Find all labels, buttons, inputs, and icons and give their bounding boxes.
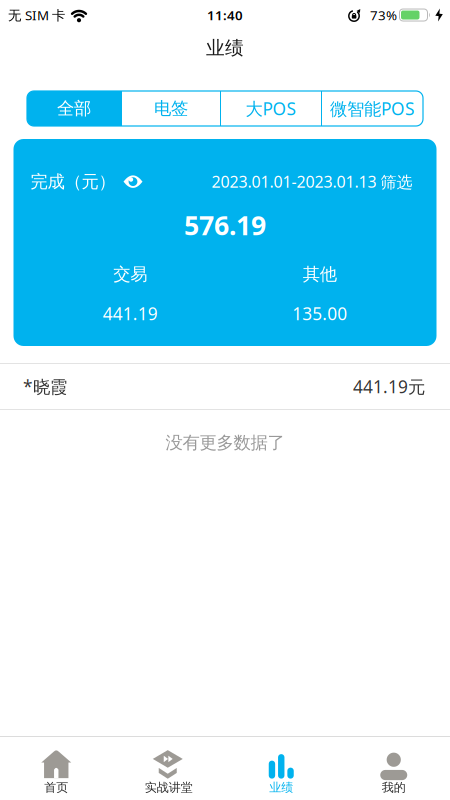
staticText: 没有更多数据了 [165,432,284,453]
staticText: 全部 [57,98,91,119]
staticText: 首页 [44,780,68,795]
button[interactable]: 业绩 [225,742,337,795]
button[interactable]: 实战讲堂 [112,742,225,795]
button[interactable]: 微智能POS [322,91,423,126]
button[interactable]: *晓霞 [0,364,450,409]
staticText: 441.19 [103,302,158,325]
button[interactable]: 我的 [337,742,450,795]
staticText: *晓霞 [23,375,67,398]
staticText: 其他 [303,264,337,285]
staticText: 2023.01.01-2023.01.13 筛选 [211,171,412,192]
button[interactable]: 显示金额 [115,175,142,189]
staticText: 业绩 [269,780,293,795]
button[interactable]: 首页 [0,742,112,795]
button[interactable]: 大POS [221,91,321,126]
button[interactable]: 电签 [122,91,220,126]
staticText: 无 SIM 卡 [8,6,65,24]
staticText: 电签 [154,98,188,119]
staticText: 业绩 [206,36,244,59]
staticText: 交易 [113,264,147,285]
staticText: 大POS [245,97,296,120]
staticText: 11:40 [207,6,243,24]
staticText: 我的 [382,780,406,795]
staticText: 微智能POS [330,97,415,120]
button[interactable]: 全部 [27,91,121,126]
staticText: 135.00 [292,302,347,325]
staticText: 实战讲堂 [145,780,193,795]
staticText: 完成（元） [30,171,115,192]
staticText: 576.19 [184,207,266,243]
button[interactable]: 筛选 [211,171,412,192]
staticText: 441.19元 [353,375,425,398]
staticText: 73% [370,6,397,24]
